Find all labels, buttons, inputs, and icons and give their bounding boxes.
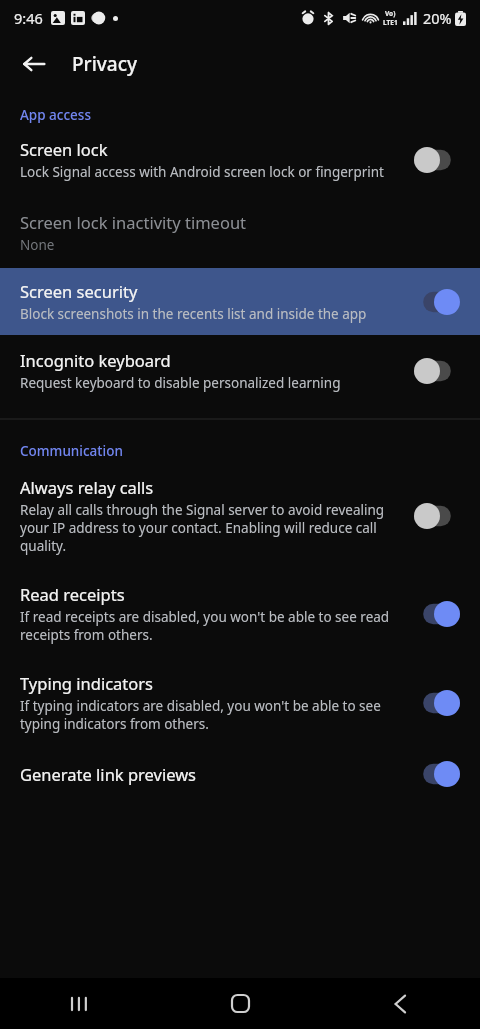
staticText: Screen security	[20, 280, 138, 302]
button[interactable]: Generate link previews	[0, 747, 480, 801]
staticText: Always relay calls	[20, 476, 154, 498]
button[interactable]: Toggle off	[414, 503, 460, 529]
staticText: Privacy	[72, 51, 137, 77]
staticText: 20%	[423, 8, 452, 28]
button[interactable]: Toggle on	[414, 289, 460, 315]
staticText: App access	[20, 106, 91, 124]
button[interactable]: Read receipts	[0, 569, 480, 658]
staticText: Communication	[20, 442, 123, 460]
button[interactable]: Always relay calls	[0, 462, 480, 569]
staticText: None	[20, 236, 55, 254]
button[interactable]: Toggle on	[414, 690, 460, 716]
button[interactable]: Toggle off	[414, 358, 460, 384]
staticText: Read receipts	[20, 583, 125, 605]
button[interactable]: Home	[160, 978, 320, 1029]
staticText: Vo)	[385, 9, 396, 18]
button[interactable]: Screen security	[0, 268, 480, 335]
button[interactable]: Recent apps	[0, 978, 160, 1029]
staticText: Screen lock inactivity timeout	[20, 211, 247, 233]
staticText: Incognito keyboard	[20, 349, 171, 371]
button[interactable]: Incognito keyboard	[0, 335, 480, 408]
staticText: Generate link previews	[20, 763, 197, 785]
button[interactable]: Screen lock	[0, 126, 480, 195]
staticText: Typing indicators	[20, 672, 153, 694]
button[interactable]: Toggle off	[414, 147, 460, 173]
button[interactable]: Toggle on	[414, 761, 460, 787]
staticText: Lock Signal access with Android screen l…	[20, 163, 384, 181]
button[interactable]: Back	[10, 40, 58, 88]
button[interactable]: Back	[320, 978, 480, 1029]
staticText: Relay all calls through the Signal serve…	[20, 501, 398, 555]
staticText: If typing indicators are disabled, you w…	[20, 697, 398, 733]
button[interactable]: Toggle on	[414, 601, 460, 627]
staticText: 9:46	[14, 8, 43, 28]
button[interactable]: Screen lock inactivity timeout	[0, 195, 480, 268]
staticText: Block screenshots in the recents list an…	[20, 305, 367, 323]
staticText: LTE1	[383, 18, 398, 27]
staticText: If read receipts are disabled, you won't…	[20, 608, 398, 644]
staticText: Request keyboard to disable personalized…	[20, 374, 341, 392]
staticText: Screen lock	[20, 138, 108, 160]
button[interactable]: Typing indicators	[0, 658, 480, 747]
